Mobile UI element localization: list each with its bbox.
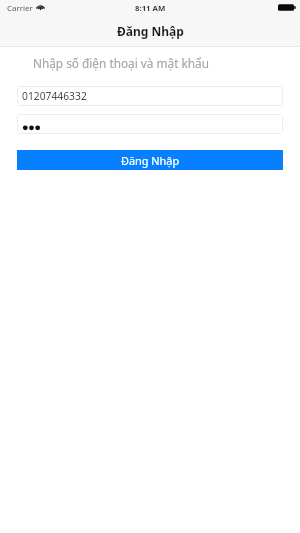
staticText: Carrier bbox=[7, 3, 33, 14]
staticText: 01207446332 bbox=[22, 89, 87, 103]
staticText: Nhập số điện thoại và mật khẩu bbox=[33, 55, 209, 71]
staticText: 8:11 AM bbox=[135, 3, 166, 14]
other: Wi-Fi signal bbox=[36, 3, 45, 11]
button[interactable]: 01207446332 bbox=[17, 86, 283, 106]
button[interactable]: Đăng Nhập bbox=[17, 150, 283, 170]
button[interactable]: Mật khẩu bbox=[17, 114, 283, 134]
other: Battery full bbox=[278, 4, 296, 11]
staticText: Đăng Nhập bbox=[117, 23, 184, 39]
staticText: Đăng Nhập bbox=[121, 153, 180, 168]
